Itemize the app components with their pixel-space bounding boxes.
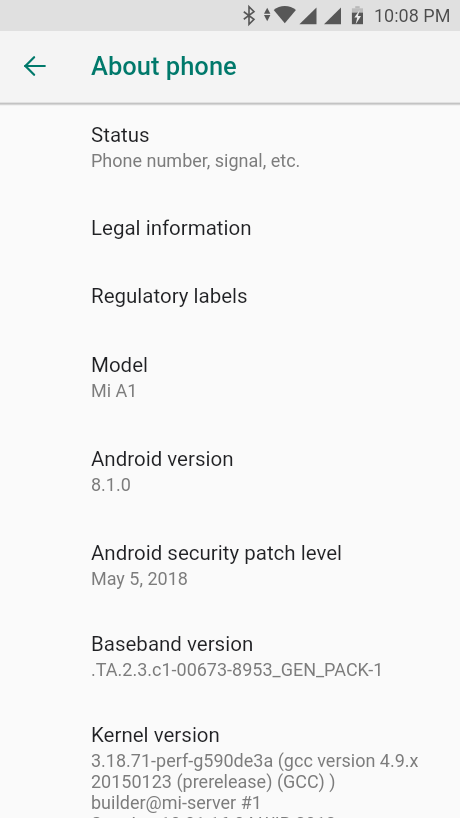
button[interactable]: Model [0,341,460,423]
button[interactable]: Legal information [0,204,460,238]
button[interactable]: Android security patch level [0,529,460,611]
staticText: 10:08 PM [374,5,451,27]
staticText: Legal information [91,216,252,240]
button[interactable]: Kernel version [0,711,460,818]
staticText: Android security patch level [91,541,343,565]
staticText: About phone [91,50,237,82]
staticText: Regulatory labels [91,284,248,308]
staticText: Android version [91,447,234,471]
staticText: Kernel version [91,723,220,747]
button[interactable]: Back [11,42,59,90]
staticText: Mi A1 [91,380,138,401]
staticText: Baseband version [91,632,254,656]
button[interactable]: Regulatory labels [0,272,460,306]
staticText: .TA.2.3.c1-00673-8953_GEN_PACK-1 [91,659,384,680]
staticText: Model [91,353,149,377]
staticText: 8.1.0 [91,474,131,495]
staticText: May 5, 2018 [91,568,188,589]
button[interactable]: Baseband version [0,620,460,702]
staticText: Phone number, signal, etc. [91,150,301,171]
button[interactable]: Android version [0,435,460,517]
staticText: Status [91,123,150,147]
button[interactable]: Status [0,111,460,193]
staticText: 3.18.71-perf-g590de3a (gcc version 4.9.x… [91,750,419,818]
